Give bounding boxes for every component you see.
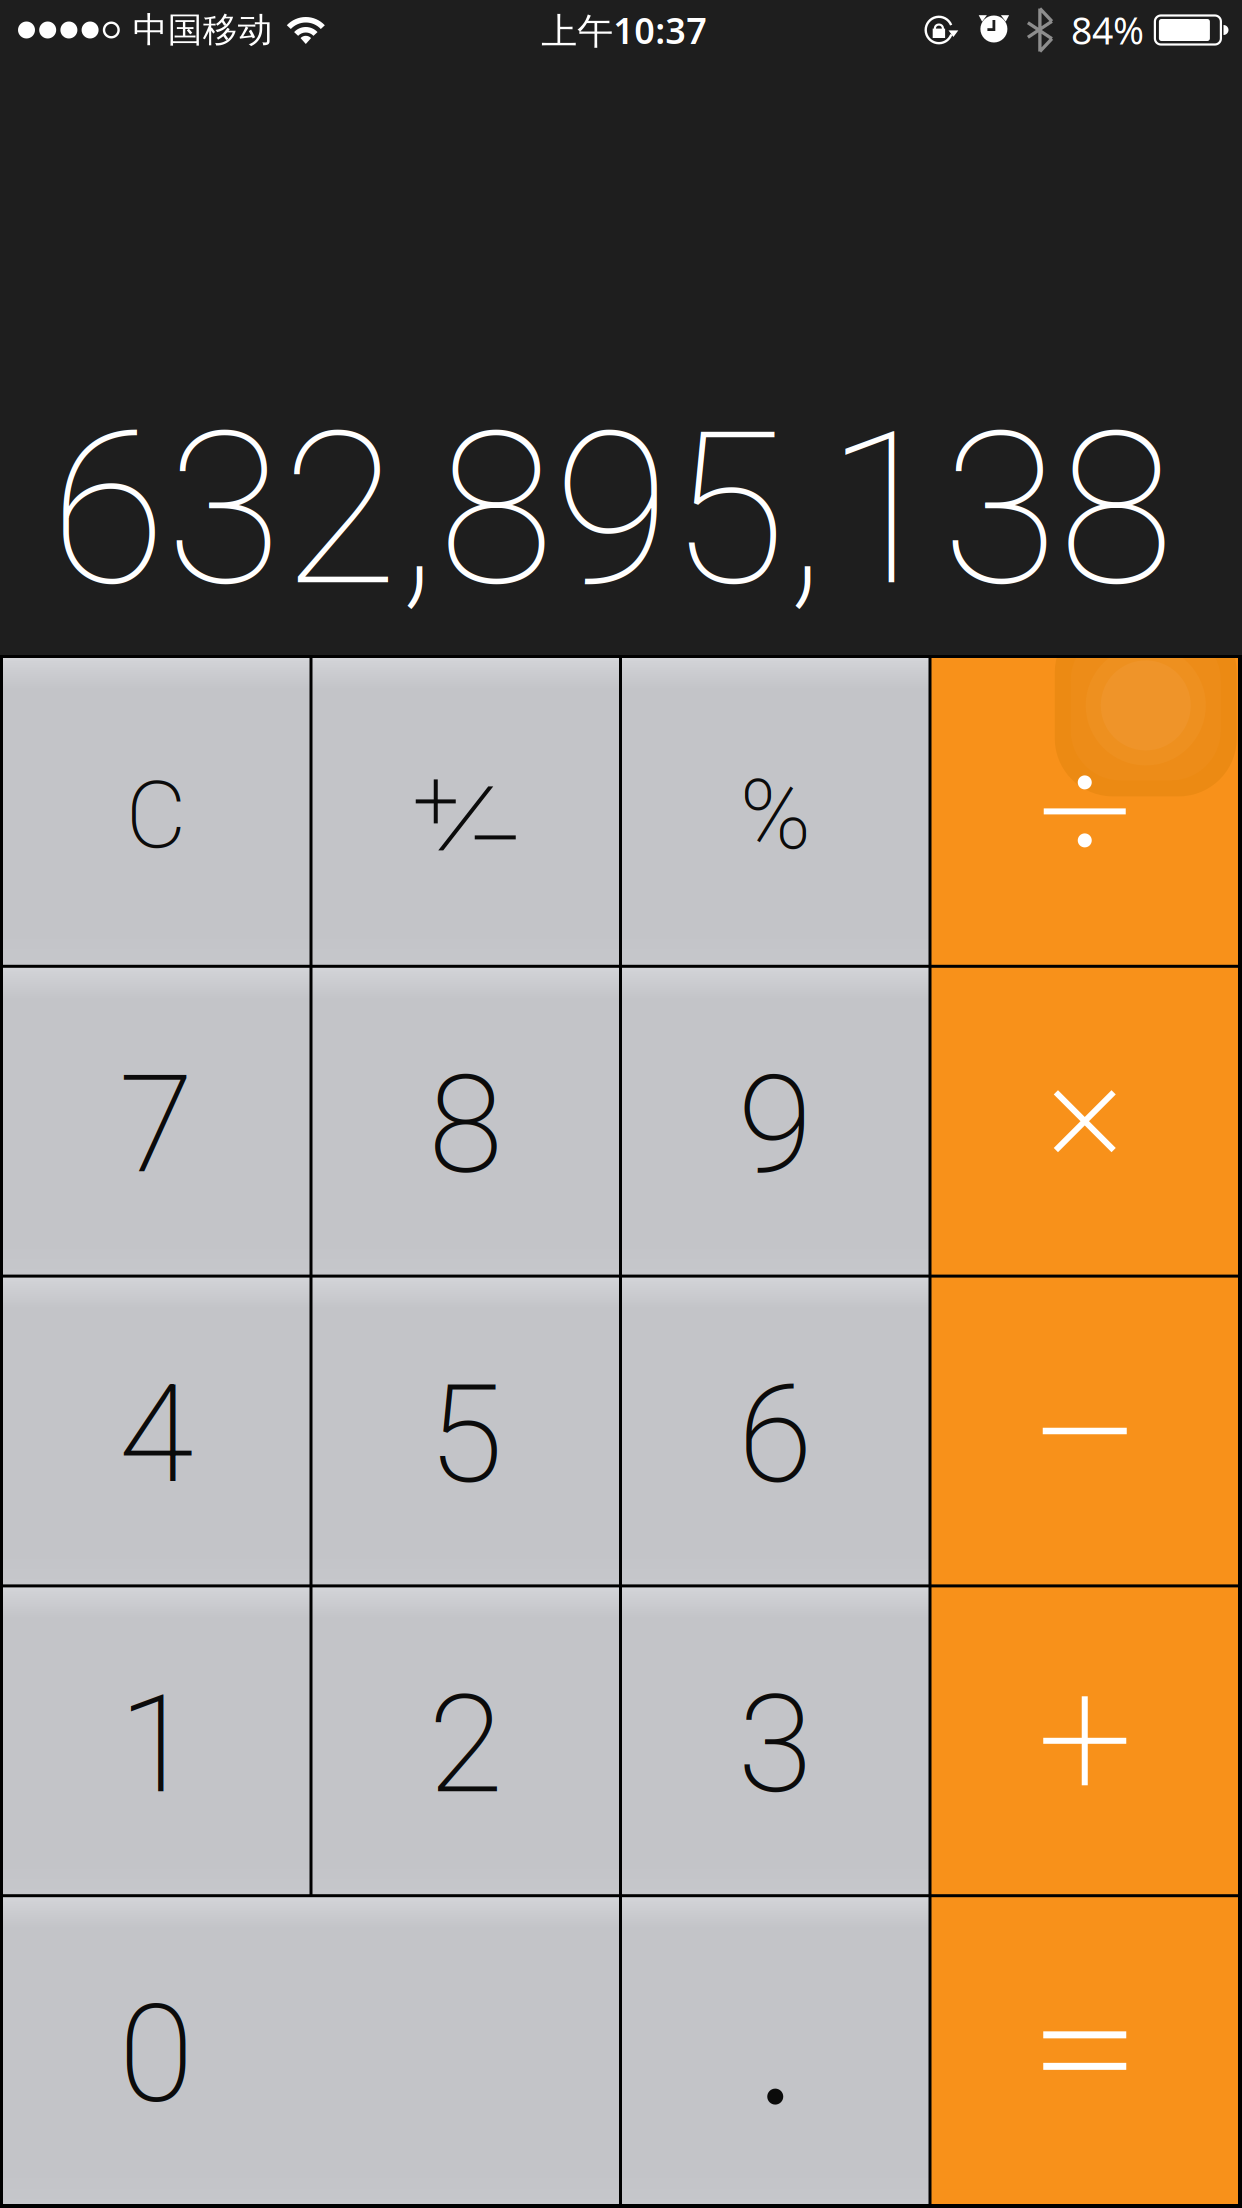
button[interactable] — [312, 1278, 619, 1584]
staticText: 84% — [1071, 5, 1144, 55]
button[interactable] — [312, 968, 619, 1275]
staticText: 中国移动 — [133, 9, 273, 51]
button[interactable]: Subtract — [931, 1278, 1238, 1584]
button[interactable] — [622, 968, 928, 1275]
staticText: % — [740, 759, 811, 872]
button[interactable]: Multiply — [931, 968, 1238, 1275]
staticText: 6 — [738, 1355, 813, 1515]
button[interactable] — [3, 1587, 309, 1894]
button[interactable] — [622, 1587, 928, 1894]
button[interactable]: Decimal point — [622, 1897, 928, 2204]
staticText: C — [126, 761, 187, 870]
staticText: 上午10:37 — [541, 6, 707, 54]
staticText: 1 — [119, 1665, 194, 1824]
button[interactable]: Equals — [931, 1897, 1238, 2204]
staticText: 9 — [738, 1045, 813, 1205]
button[interactable]: Percent — [622, 658, 928, 965]
staticText: 4 — [119, 1355, 194, 1515]
staticText: 632,895,138 — [50, 386, 1174, 634]
button[interactable]: Clear — [3, 658, 309, 965]
button[interactable]: Divide — [931, 658, 1238, 965]
button[interactable] — [312, 1587, 619, 1894]
staticText: 7 — [119, 1045, 194, 1205]
staticText: 5 — [428, 1355, 503, 1515]
button[interactable]: Add — [931, 1587, 1238, 1894]
button[interactable] — [3, 1897, 619, 2204]
button[interactable] — [3, 1278, 309, 1584]
button[interactable]: Toggle sign — [312, 658, 619, 965]
staticText: 2 — [428, 1665, 503, 1824]
staticText: 3 — [738, 1665, 813, 1824]
button[interactable] — [622, 1278, 928, 1584]
staticText: 0 — [119, 1975, 194, 2134]
staticText: 8 — [428, 1045, 503, 1205]
button[interactable] — [3, 968, 309, 1275]
